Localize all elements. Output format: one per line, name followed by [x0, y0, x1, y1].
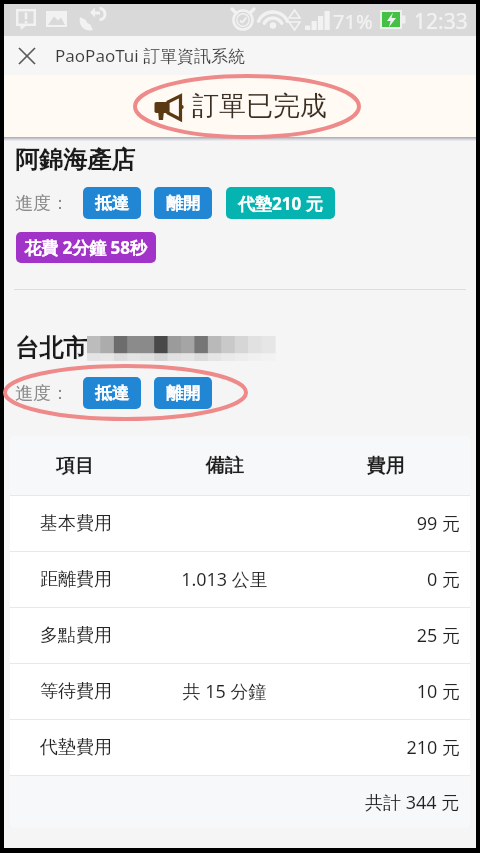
staticText: 共 15 分鐘: [162, 679, 287, 704]
staticText: 台北市: [15, 333, 87, 363]
staticText: 離開: [166, 193, 200, 214]
staticText: 代墊210 元: [238, 192, 323, 215]
staticText: 距離費用: [40, 568, 162, 591]
staticText: 備註: [162, 454, 287, 478]
staticText: 等待費用: [40, 680, 162, 703]
staticText: 12:33: [414, 7, 468, 36]
button[interactable]: Close: [4, 36, 50, 75]
button[interactable]: 抵達: [83, 187, 141, 219]
staticText: PaoPaoTui 訂單資訊系統: [55, 44, 246, 67]
staticText: 共計 344 元: [365, 790, 460, 815]
button[interactable]: 花費 2分鐘 58秒: [16, 232, 156, 263]
staticText: 費用: [301, 454, 470, 478]
staticText: 抵達: [95, 383, 129, 404]
button[interactable]: 代墊210 元: [226, 187, 335, 219]
staticText: 基本費用: [40, 512, 162, 535]
staticText: 99 元: [287, 511, 460, 536]
staticText: 10 元: [287, 679, 460, 704]
staticText: 花費 2分鐘 58秒: [24, 236, 148, 259]
staticText: 進度：: [15, 382, 69, 405]
button[interactable]: 等待費用: [10, 664, 470, 719]
staticText: 離開: [166, 383, 200, 404]
button[interactable]: 離開: [154, 187, 212, 219]
staticText: 代墊費用: [40, 736, 162, 759]
button[interactable]: 抵達: [83, 377, 141, 409]
staticText: 項目: [56, 454, 162, 478]
button[interactable]: 多點費用: [10, 608, 470, 663]
staticText: 25 元: [287, 623, 460, 648]
staticText: 阿錦海產店: [15, 145, 135, 175]
staticText: 多點費用: [40, 624, 162, 647]
staticText: 抵達: [95, 193, 129, 214]
staticText: 進度：: [15, 192, 69, 215]
button[interactable]: 距離費用: [10, 552, 470, 607]
staticText: 訂單已完成: [192, 89, 327, 123]
staticText: 0 元: [287, 567, 460, 592]
button[interactable]: 基本費用: [10, 496, 470, 551]
button[interactable]: 離開: [154, 377, 212, 409]
button[interactable]: 代墊費用: [10, 720, 470, 775]
staticText: 71%: [333, 8, 373, 35]
staticText: 210 元: [287, 735, 460, 760]
staticText: 1.013 公里: [162, 567, 287, 592]
